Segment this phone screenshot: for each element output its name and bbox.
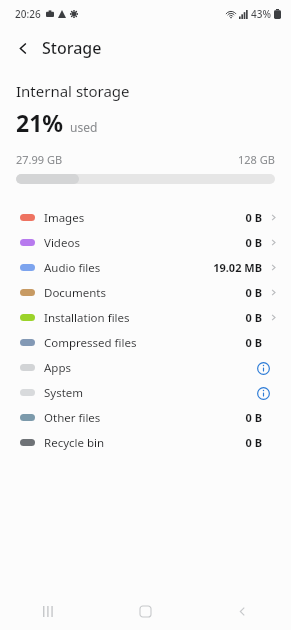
button[interactable]: Installation files bbox=[0, 305, 291, 330]
button[interactable]: Apps bbox=[0, 355, 291, 380]
staticText: Recycle bin bbox=[44, 435, 105, 451]
button[interactable]: System bbox=[0, 380, 291, 405]
staticText: Installation files bbox=[44, 310, 130, 326]
staticText: 43% bbox=[251, 7, 271, 21]
staticText: Apps bbox=[44, 360, 72, 376]
staticText: 0 B bbox=[245, 310, 262, 325]
staticText: 20:26 bbox=[15, 7, 41, 21]
staticText: used bbox=[70, 119, 98, 135]
staticText: 19.02 MB bbox=[213, 260, 262, 275]
staticText: 0 B bbox=[245, 235, 262, 250]
staticText: Audio files bbox=[44, 260, 101, 276]
button[interactable]: Home bbox=[97, 592, 194, 630]
other: More information bbox=[255, 385, 271, 401]
button[interactable]: Audio files bbox=[0, 255, 291, 280]
button[interactable]: Recent apps bbox=[0, 592, 97, 630]
staticText: System bbox=[44, 385, 84, 401]
staticText: 0 B bbox=[245, 410, 262, 425]
staticText: 128 GB bbox=[238, 152, 275, 167]
staticText: Videos bbox=[44, 235, 80, 251]
button[interactable]: Compressed files bbox=[0, 330, 291, 355]
staticText: Other files bbox=[44, 410, 101, 426]
staticText: Documents bbox=[44, 285, 106, 301]
other: More information bbox=[255, 360, 271, 376]
button[interactable]: Back bbox=[10, 35, 36, 61]
staticText: Internal storage bbox=[16, 81, 130, 101]
button[interactable]: Images bbox=[0, 205, 291, 230]
button[interactable]: Recycle bin bbox=[0, 430, 291, 455]
staticText: Compressed files bbox=[44, 335, 137, 351]
staticText: 27.99 GB bbox=[16, 152, 63, 167]
staticText: 21% bbox=[16, 107, 64, 138]
staticText: Storage bbox=[42, 37, 102, 59]
staticText: 0 B bbox=[245, 435, 262, 450]
staticText: Images bbox=[44, 210, 85, 226]
staticText: 0 B bbox=[245, 210, 262, 225]
button[interactable]: Documents bbox=[0, 280, 291, 305]
staticText: 0 B bbox=[245, 285, 262, 300]
button[interactable]: Videos bbox=[0, 230, 291, 255]
button[interactable]: Other files bbox=[0, 405, 291, 430]
staticText: 0 B bbox=[245, 335, 262, 350]
